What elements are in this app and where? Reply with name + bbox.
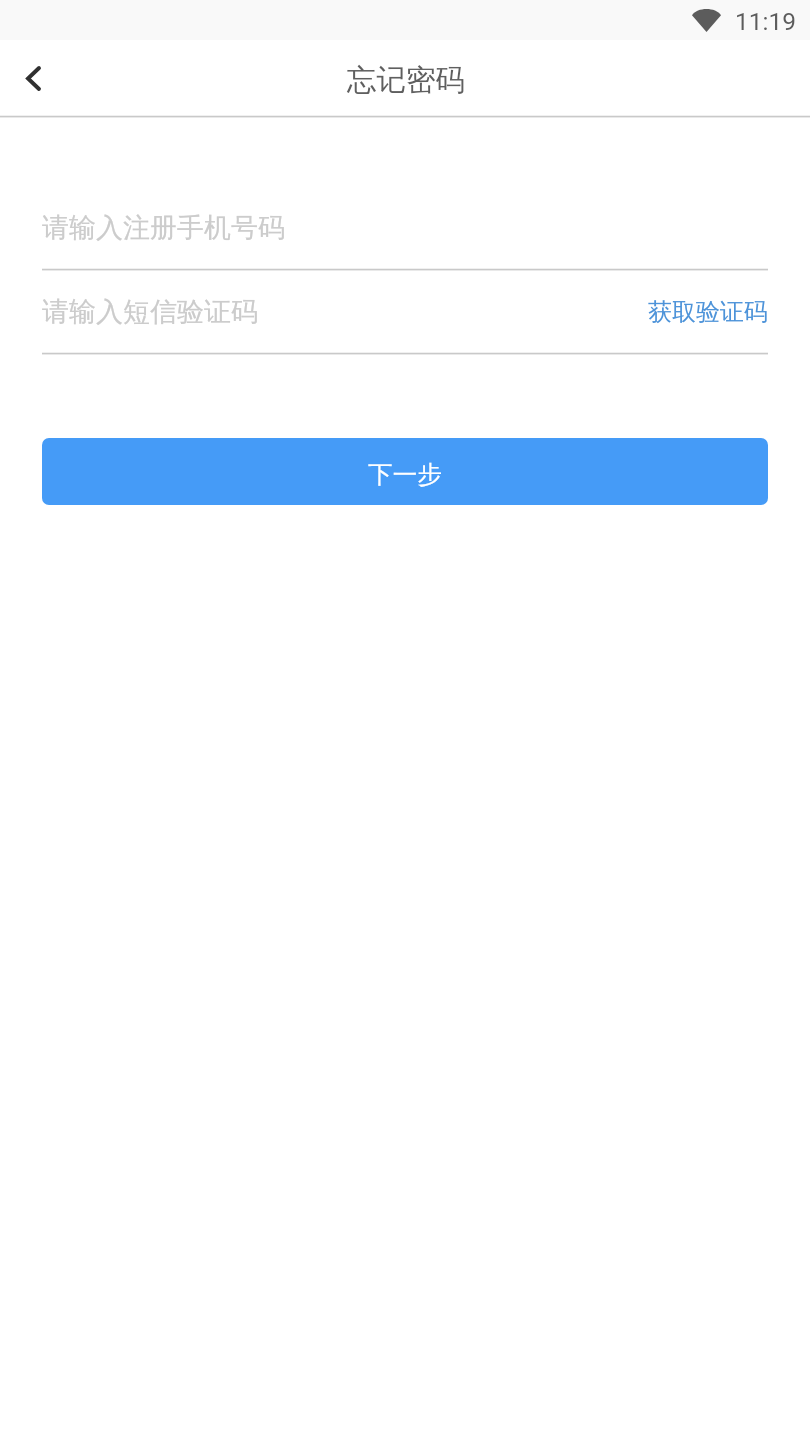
staticText: 请输入短信验证码 [42, 295, 258, 329]
staticText: 忘记密码 [347, 62, 465, 99]
staticText: 11:19 [735, 7, 797, 36]
button[interactable]: 下一步 [42, 438, 768, 505]
other: Wi-Fi connected [692, 8, 721, 32]
button[interactable]: 请输入注册手机号码 [42, 187, 768, 268]
button[interactable]: 获取验证码 [624, 271, 768, 352]
button[interactable]: Back [0, 46, 66, 112]
staticText: 请输入注册手机号码 [42, 211, 285, 245]
staticText: 获取验证码 [648, 297, 768, 327]
staticText: 下一步 [368, 459, 442, 490]
button[interactable]: 请输入短信验证码 [42, 271, 624, 352]
